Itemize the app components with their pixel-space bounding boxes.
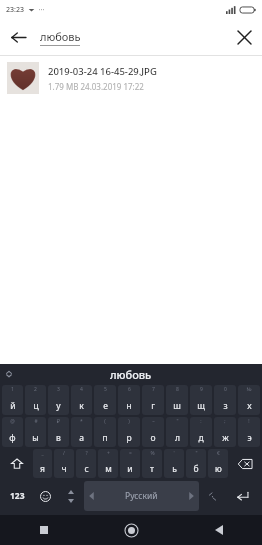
- button[interactable]: Home: [88, 515, 175, 545]
- staticText: %: [150, 450, 155, 457]
- staticText: щ: [197, 400, 205, 412]
- button[interactable]: %: [142, 449, 162, 478]
- button[interactable]: €: [208, 449, 228, 478]
- staticText: любовь: [40, 29, 81, 44]
- staticText: 1.79 MB 24.03.2019 17:22: [48, 81, 144, 92]
- button[interactable]: 6: [118, 385, 140, 415]
- staticText: о: [150, 432, 156, 444]
- button[interactable]: Comma: [59, 481, 83, 511]
- button[interactable]: 4: [71, 385, 92, 415]
- staticText: ): [128, 418, 130, 425]
- button[interactable]: (: [94, 417, 116, 447]
- button[interactable]: Русский: [84, 481, 199, 511]
- staticText: 123: [10, 490, 25, 502]
- button[interactable]: ;: [214, 417, 236, 447]
- staticText: д: [198, 432, 204, 444]
- button[interactable]: Period: [200, 481, 224, 511]
- button[interactable]: любовь: [40, 29, 226, 46]
- button[interactable]: 1: [2, 385, 23, 415]
- staticText: 2019-03-24 16-45-29.JPG: [48, 65, 157, 78]
- staticText: а: [79, 432, 84, 444]
- button[interactable]: 2: [25, 385, 46, 415]
- button[interactable]: ₽: [48, 417, 69, 447]
- staticText: 8: [176, 386, 179, 393]
- button[interactable]: ": [166, 417, 188, 447]
- button[interactable]: :: [190, 417, 212, 447]
- staticText: 9: [200, 386, 203, 393]
- staticText: ь: [172, 463, 177, 475]
- button[interactable]: 7: [142, 385, 164, 415]
- button[interactable]: Back: [175, 515, 262, 545]
- staticText: ': [173, 450, 175, 457]
- staticText: 4: [80, 386, 83, 393]
- button[interactable]: #: [25, 417, 46, 447]
- button[interactable]: 2019-03-24 16-45-29.JPG: [0, 56, 262, 100]
- staticText: ф: [9, 432, 16, 444]
- staticText: г: [151, 400, 155, 412]
- staticText: №: [246, 386, 252, 393]
- button[interactable]: =: [120, 449, 140, 478]
- staticText: 2: [34, 386, 37, 393]
- staticText: _: [41, 450, 44, 457]
- staticText: и: [127, 463, 133, 475]
- staticText: з: [223, 400, 228, 412]
- staticText: /: [63, 450, 65, 457]
- button[interactable]: Clear: [226, 19, 262, 55]
- button[interactable]: _: [33, 449, 52, 478]
- staticText: 1: [11, 386, 14, 393]
- button[interactable]: Enter: [224, 481, 260, 511]
- button[interactable]: @: [2, 417, 23, 447]
- staticText: #: [34, 418, 38, 425]
- staticText: я: [40, 463, 45, 475]
- staticText: у: [56, 400, 61, 412]
- button[interactable]: Emoji: [32, 481, 59, 511]
- button[interactable]: /: [54, 449, 74, 478]
- staticText: =: [129, 450, 132, 457]
- staticText: Русский: [125, 490, 158, 502]
- staticText: е: [103, 400, 108, 412]
- staticText: х: [247, 400, 252, 412]
- staticText: л: [175, 432, 180, 444]
- staticText: к: [79, 400, 84, 412]
- button[interactable]: !: [238, 417, 260, 447]
- button[interactable]: ': [164, 449, 184, 478]
- button[interactable]: 5: [94, 385, 116, 415]
- button[interactable]: +: [98, 449, 118, 478]
- button[interactable]: 0: [214, 385, 236, 415]
- staticText: т: [150, 463, 154, 475]
- staticText: б: [193, 463, 199, 475]
- staticText: ч: [61, 463, 67, 475]
- staticText: (: [104, 418, 106, 425]
- button[interactable]: любовь: [110, 367, 152, 382]
- button[interactable]: 9: [190, 385, 212, 415]
- staticText: 0: [224, 386, 227, 393]
- staticText: ж: [222, 432, 229, 444]
- button[interactable]: 3: [48, 385, 69, 415]
- button[interactable]: ": [186, 449, 206, 478]
- staticText: ш: [173, 400, 181, 412]
- staticText: м: [105, 463, 112, 475]
- button[interactable]: –: [142, 417, 164, 447]
- staticText: *: [80, 418, 83, 425]
- staticText: ": [176, 418, 179, 425]
- staticText: любовь: [110, 367, 152, 382]
- staticText: ц: [33, 400, 39, 412]
- button[interactable]: ): [118, 417, 140, 447]
- staticText: 6: [128, 386, 131, 393]
- button[interactable]: Shift: [2, 449, 31, 478]
- staticText: +: [107, 450, 110, 457]
- button[interactable]: Recents: [0, 515, 88, 545]
- button[interactable]: 8: [166, 385, 188, 415]
- staticText: н: [126, 400, 132, 412]
- staticText: ?: [85, 450, 88, 457]
- button[interactable]: 123: [2, 481, 32, 511]
- button[interactable]: ?: [76, 449, 96, 478]
- button[interactable]: Backspace: [230, 449, 260, 478]
- staticText: ₽: [57, 418, 60, 425]
- staticText: @: [10, 418, 15, 425]
- button[interactable]: Expand suggestions: [0, 365, 18, 383]
- button[interactable]: *: [71, 417, 92, 447]
- button[interactable]: №: [238, 385, 260, 415]
- staticText: €: [217, 450, 220, 457]
- button[interactable]: Back: [0, 19, 36, 55]
